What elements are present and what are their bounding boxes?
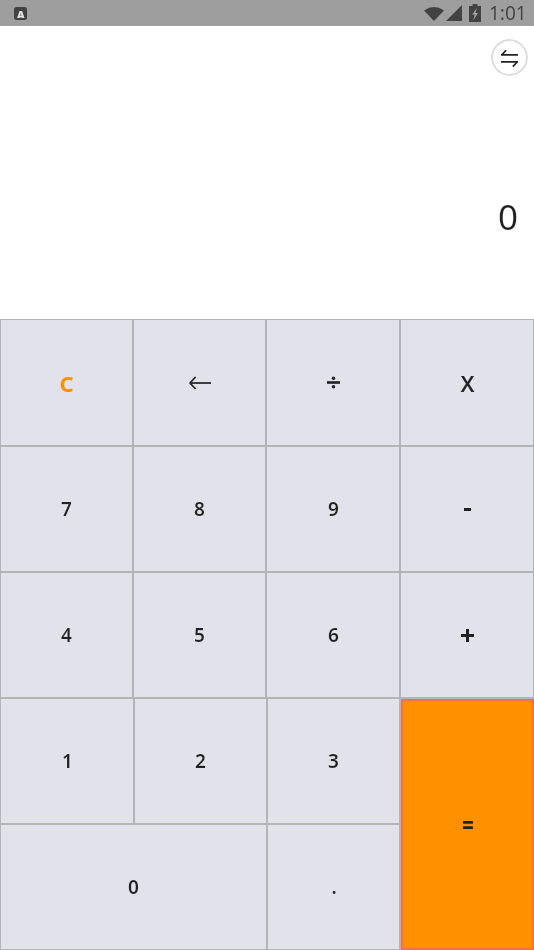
button[interactable]: Divide: [267, 320, 399, 445]
staticText: 1:01: [489, 0, 527, 26]
staticText: 0: [128, 874, 139, 900]
button[interactable]: X: [401, 320, 533, 445]
button[interactable]: Backspace: [134, 320, 265, 445]
staticText: 1: [62, 748, 73, 774]
staticText: X: [460, 368, 475, 398]
staticText: 9: [328, 496, 339, 522]
staticText: 4: [61, 622, 72, 648]
button[interactable]: Plus: [401, 573, 533, 697]
button[interactable]: Equals: [403, 701, 532, 948]
button[interactable]: 4: [1, 573, 132, 697]
staticText: 5: [194, 622, 205, 648]
button[interactable]: 3: [268, 699, 399, 823]
staticText: C: [59, 368, 74, 398]
staticText: A: [17, 7, 25, 18]
button[interactable]: Minus: [401, 447, 533, 571]
button[interactable]: .: [268, 825, 399, 949]
button[interactable]: 8: [134, 447, 265, 571]
button[interactable]: 7: [1, 447, 132, 571]
button[interactable]: 2: [135, 699, 266, 823]
staticText: 2: [195, 748, 206, 774]
staticText: 3: [328, 748, 339, 774]
staticText: 7: [61, 496, 72, 522]
button[interactable]: 0: [1, 825, 266, 949]
button[interactable]: 1: [1, 699, 133, 823]
button[interactable]: 5: [134, 573, 265, 697]
staticText: 0: [498, 193, 519, 241]
button[interactable]: 6: [267, 573, 399, 697]
button[interactable]: 9: [267, 447, 399, 571]
button[interactable]: C: [1, 320, 132, 445]
button[interactable]: Swap: [491, 39, 528, 76]
staticText: 6: [328, 622, 339, 648]
staticText: .: [331, 874, 337, 900]
staticText: 8: [194, 496, 205, 522]
